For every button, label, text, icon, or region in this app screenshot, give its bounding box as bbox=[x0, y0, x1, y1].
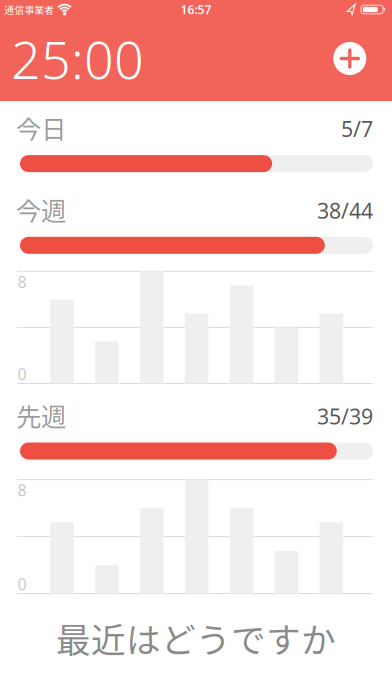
staticText: 通信事業者 bbox=[4, 2, 54, 17]
staticText: 25:00 bbox=[11, 24, 144, 93]
staticText: 最近はどうですか bbox=[56, 613, 336, 663]
button[interactable] bbox=[333, 42, 366, 75]
staticText: 5/7 bbox=[341, 115, 373, 143]
staticText: 35/39 bbox=[317, 402, 373, 430]
staticText: 8 bbox=[17, 271, 26, 292]
staticText: 今日 bbox=[16, 109, 66, 146]
staticText: 8 bbox=[17, 479, 26, 501]
staticText: 0 bbox=[17, 363, 26, 385]
staticText: 今週 bbox=[16, 191, 66, 228]
staticText: 38/44 bbox=[317, 196, 373, 225]
staticText: 先週 bbox=[16, 397, 66, 434]
staticText: 0 bbox=[17, 573, 26, 595]
staticText: 16:57 bbox=[180, 1, 211, 17]
